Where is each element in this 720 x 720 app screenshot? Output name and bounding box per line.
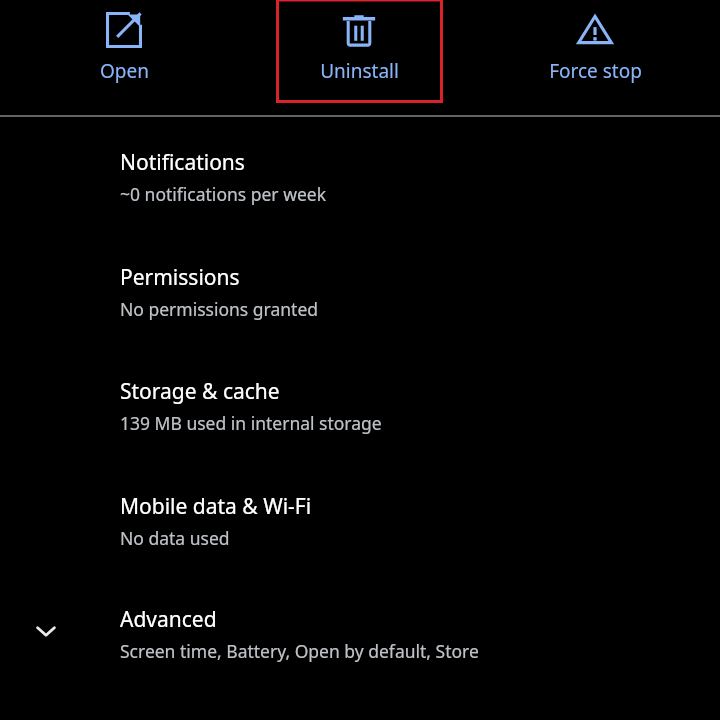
button[interactable]: Open [41, 0, 207, 103]
staticText: Uninstall [320, 58, 399, 84]
button[interactable]: Storage & cache [0, 369, 720, 465]
staticText: Notifications [120, 148, 245, 177]
button[interactable]: Permissions [0, 255, 720, 351]
button[interactable]: Mobile data & Wi-Fi [0, 484, 720, 580]
staticText: Storage & cache [120, 377, 280, 406]
button[interactable]: Uninstall [276, 0, 442, 103]
staticText: Advanced [120, 605, 217, 634]
staticText: Mobile data & Wi-Fi [120, 492, 312, 521]
button[interactable]: Force stop [512, 0, 678, 103]
staticText: No permissions granted [120, 297, 319, 321]
button[interactable]: Notifications [0, 140, 720, 236]
staticText: Force stop [549, 58, 642, 84]
staticText: Open [100, 58, 149, 84]
staticText: Screen time, Battery, Open by default, S… [120, 639, 479, 663]
button[interactable]: Advanced [0, 597, 720, 693]
staticText: ~0 notifications per week [120, 182, 326, 206]
staticText: No data used [120, 526, 230, 550]
staticText: 139 MB used in internal storage [120, 411, 382, 435]
staticText: Permissions [120, 263, 240, 292]
